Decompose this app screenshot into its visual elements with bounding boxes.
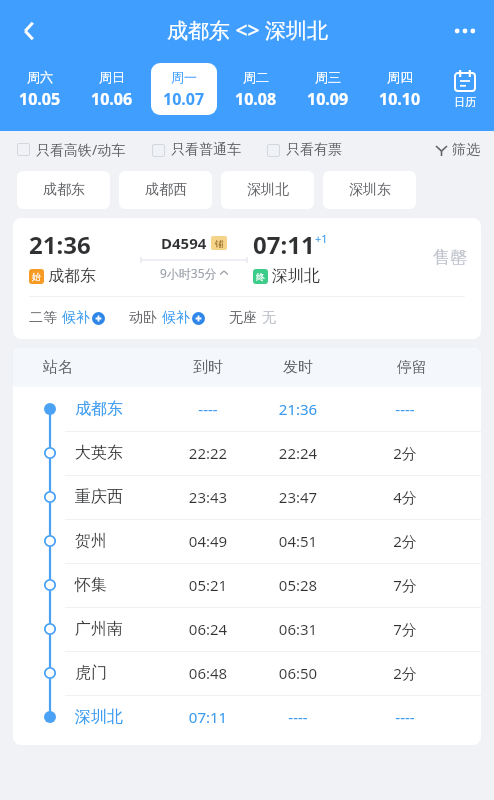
button[interactable]: More options — [442, 8, 488, 54]
button[interactable]: 深圳北 — [13, 695, 481, 739]
staticText: 日历 — [454, 95, 476, 109]
staticText: 停留 — [343, 358, 481, 377]
staticText: 04:51 — [253, 531, 343, 551]
staticText: 无 — [262, 309, 276, 327]
button[interactable]: 大英东 — [13, 431, 481, 475]
staticText: 深圳东 — [349, 181, 391, 199]
button[interactable]: 广州南 — [13, 607, 481, 651]
staticText: 成都东 <> 深圳北 — [167, 16, 328, 45]
staticText: 周日 — [99, 69, 125, 85]
button[interactable]: 21:36 — [13, 218, 481, 339]
staticText: 07:11 — [253, 228, 315, 261]
staticText: 深圳北 — [272, 266, 320, 286]
staticText: 9小时35分 — [160, 265, 217, 281]
button[interactable]: 周四 — [367, 63, 433, 115]
button[interactable]: 周一 — [151, 63, 217, 115]
button[interactable]: 深圳北 — [221, 171, 314, 209]
staticText: 23:47 — [253, 487, 343, 507]
staticText: 大英东 — [75, 443, 163, 463]
staticText: 7分 — [343, 575, 467, 595]
button[interactable]: 无座 — [229, 309, 276, 327]
button[interactable]: 周二 — [223, 63, 289, 115]
staticText: ---- — [163, 399, 253, 419]
staticText: 铺 — [215, 238, 224, 249]
staticText: 10.10 — [379, 88, 421, 110]
staticText: 10.09 — [307, 88, 349, 110]
staticText: ---- — [253, 707, 343, 727]
staticText: 06:50 — [253, 663, 343, 683]
staticText: 2分 — [343, 663, 467, 683]
staticText: 07:11 — [163, 707, 253, 727]
staticText: 周一 — [171, 69, 197, 85]
staticText: 06:48 — [163, 663, 253, 683]
button[interactable]: 周日 — [79, 63, 145, 115]
staticText: 成都东 — [43, 181, 85, 199]
button[interactable]: 周三 — [295, 63, 361, 115]
staticText: 发时 — [253, 358, 343, 377]
staticText: 06:24 — [163, 619, 253, 639]
staticText: 21:36 — [29, 228, 91, 261]
staticText: 05:28 — [253, 575, 343, 595]
button[interactable]: 只看有票 — [267, 137, 342, 163]
staticText: ---- — [343, 399, 467, 419]
staticText: 无座 — [229, 309, 257, 327]
button[interactable]: 动卧 — [129, 309, 205, 327]
staticText: 站名 — [43, 358, 163, 377]
staticText: 10.05 — [19, 88, 61, 110]
staticText: 只看普通车 — [171, 141, 241, 159]
button[interactable]: 怀集 — [13, 563, 481, 607]
staticText: ---- — [343, 707, 467, 727]
staticText: 10.06 — [91, 88, 133, 110]
staticText: 到时 — [163, 358, 253, 377]
staticText: 候补 — [162, 309, 190, 327]
staticText: 10.08 — [235, 88, 277, 110]
button[interactable]: Calendar — [436, 63, 494, 115]
staticText: 10.07 — [163, 88, 205, 110]
staticText: 重庆西 — [75, 487, 163, 507]
button[interactable]: Back — [6, 8, 52, 54]
button[interactable]: 只看普通车 — [152, 137, 241, 163]
staticText: D4594 — [161, 233, 207, 253]
button[interactable]: 只看高铁/动车 — [17, 136, 126, 163]
staticText: 候补 — [62, 309, 90, 327]
button[interactable]: 贺州 — [13, 519, 481, 563]
staticText: 怀集 — [75, 575, 163, 595]
staticText: 贺州 — [75, 531, 163, 551]
button[interactable]: 成都东 — [13, 387, 481, 431]
button[interactable]: 重庆西 — [13, 475, 481, 519]
staticText: 周三 — [315, 69, 341, 85]
staticText: 06:31 — [253, 619, 343, 639]
staticText: 2分 — [343, 443, 467, 463]
staticText: 21:36 — [253, 399, 343, 419]
staticText: 周六 — [27, 69, 53, 85]
button[interactable]: 虎门 — [13, 651, 481, 695]
staticText: 23:43 — [163, 487, 253, 507]
staticText: 7分 — [343, 619, 467, 639]
button[interactable]: 二等 — [29, 309, 105, 327]
staticText: 成都西 — [145, 181, 187, 199]
staticText: 深圳北 — [75, 707, 163, 727]
staticText: 虎门 — [75, 663, 163, 683]
staticText: 筛选 — [452, 141, 480, 159]
staticText: 终 — [256, 271, 265, 282]
staticText: 周二 — [243, 69, 269, 85]
staticText: 04:49 — [163, 531, 253, 551]
staticText: 4分 — [343, 487, 467, 507]
staticText: 售罄 — [433, 247, 467, 268]
button[interactable]: 成都西 — [119, 171, 212, 209]
button[interactable]: 深圳东 — [323, 171, 416, 209]
staticText: 只看有票 — [286, 141, 342, 159]
staticText: 只看高铁/动车 — [36, 140, 126, 159]
staticText: 2分 — [343, 531, 467, 551]
staticText: 动卧 — [129, 309, 157, 327]
staticText: 周四 — [387, 69, 413, 85]
staticText: 22:24 — [253, 443, 343, 463]
button[interactable]: 周六 — [7, 63, 73, 115]
staticText: 成都东 — [48, 266, 96, 286]
button[interactable]: 成都东 — [17, 171, 110, 209]
staticText: 05:21 — [163, 575, 253, 595]
staticText: 深圳北 — [247, 181, 289, 199]
button[interactable]: 筛选 — [435, 137, 480, 163]
staticText: 二等 — [29, 309, 57, 327]
staticText: 广州南 — [75, 619, 163, 639]
